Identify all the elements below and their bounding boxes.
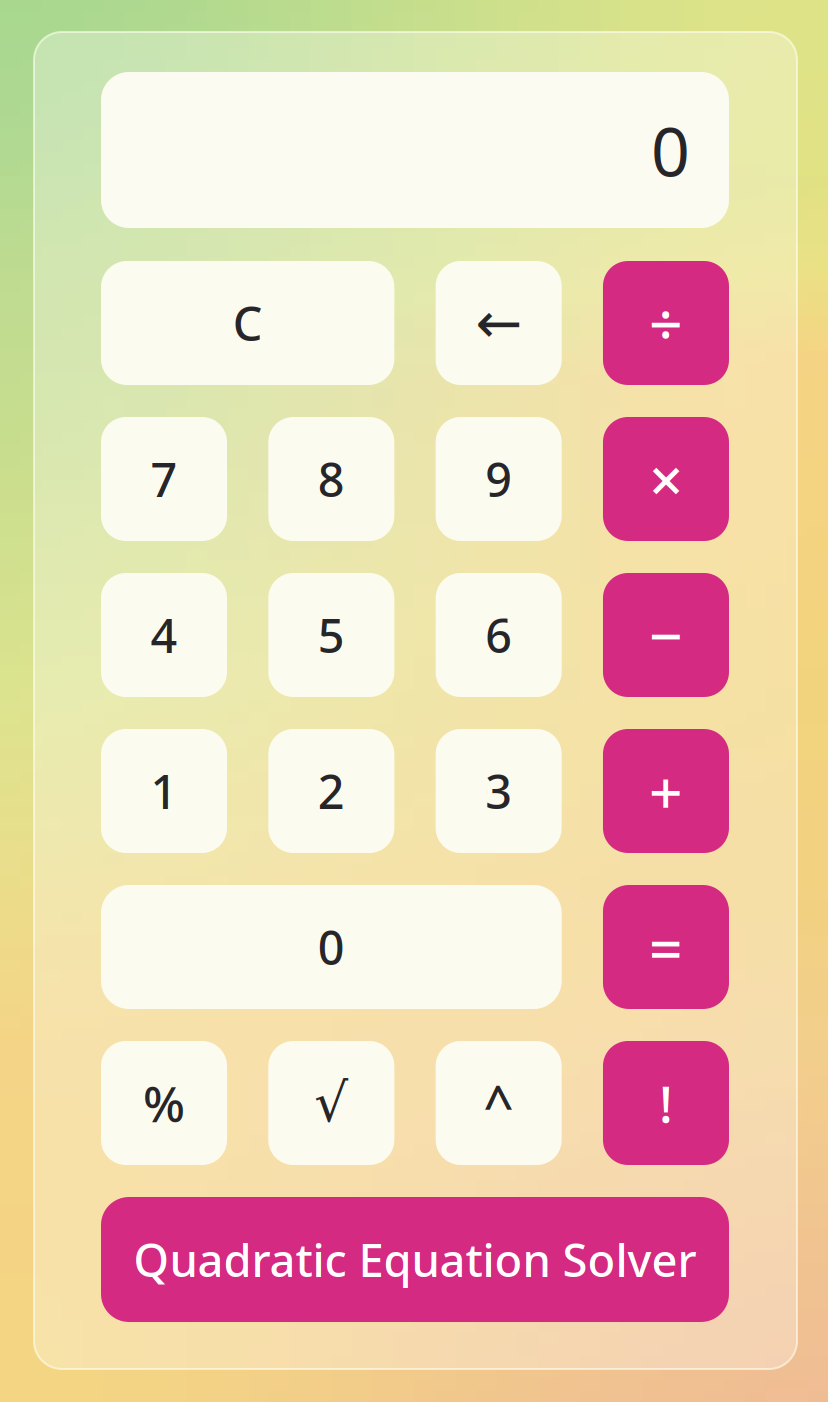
staticText: 1 — [150, 760, 177, 822]
button[interactable]: 5 — [268, 573, 394, 697]
button[interactable]: 7 — [101, 417, 227, 541]
staticText: 4 — [150, 604, 177, 666]
button[interactable]: 2 — [268, 729, 394, 853]
staticText: = — [649, 908, 683, 986]
button[interactable]: 3 — [436, 729, 562, 853]
button[interactable]: Power — [436, 1041, 562, 1165]
button[interactable]: Multiply — [603, 417, 729, 541]
button[interactable]: 8 — [268, 417, 394, 541]
button[interactable]: Percent — [101, 1041, 227, 1165]
button[interactable]: Backspace — [436, 261, 562, 385]
button[interactable]: Plus — [603, 729, 729, 853]
button[interactable]: Minus — [603, 573, 729, 697]
staticText: 2 — [318, 760, 345, 822]
button[interactable]: Square root — [268, 1041, 394, 1165]
staticText: ÷ — [649, 284, 683, 362]
staticText: 8 — [318, 448, 345, 510]
button[interactable]: 1 — [101, 729, 227, 853]
staticText: 0 — [651, 105, 690, 195]
button[interactable]: Factorial — [603, 1041, 729, 1165]
staticText: − — [649, 596, 683, 674]
button[interactable]: 6 — [436, 573, 562, 697]
button[interactable]: Quadratic Equation Solver — [101, 1197, 729, 1322]
staticText: × — [649, 439, 683, 519]
staticText: 5 — [318, 604, 345, 666]
staticText: ^ — [483, 1068, 514, 1138]
button[interactable]: Divide — [603, 261, 729, 385]
button[interactable]: Equals — [603, 885, 729, 1009]
button[interactable]: 0 — [101, 885, 562, 1009]
staticText: 9 — [485, 448, 512, 510]
button[interactable]: Clear — [101, 261, 394, 385]
staticText: 3 — [485, 760, 512, 822]
staticText: 0 — [318, 916, 345, 978]
staticText: √ — [314, 1073, 348, 1133]
staticText: ! — [659, 1069, 673, 1137]
staticText: 6 — [485, 604, 512, 666]
button[interactable]: 9 — [436, 417, 562, 541]
staticText: % — [143, 1070, 185, 1136]
staticText: C — [233, 292, 263, 354]
staticText: ← — [475, 291, 522, 355]
staticText: 7 — [150, 448, 177, 510]
staticText: Quadratic Equation Solver — [133, 1229, 696, 1290]
button[interactable]: 4 — [101, 573, 227, 697]
staticText: + — [649, 752, 683, 830]
